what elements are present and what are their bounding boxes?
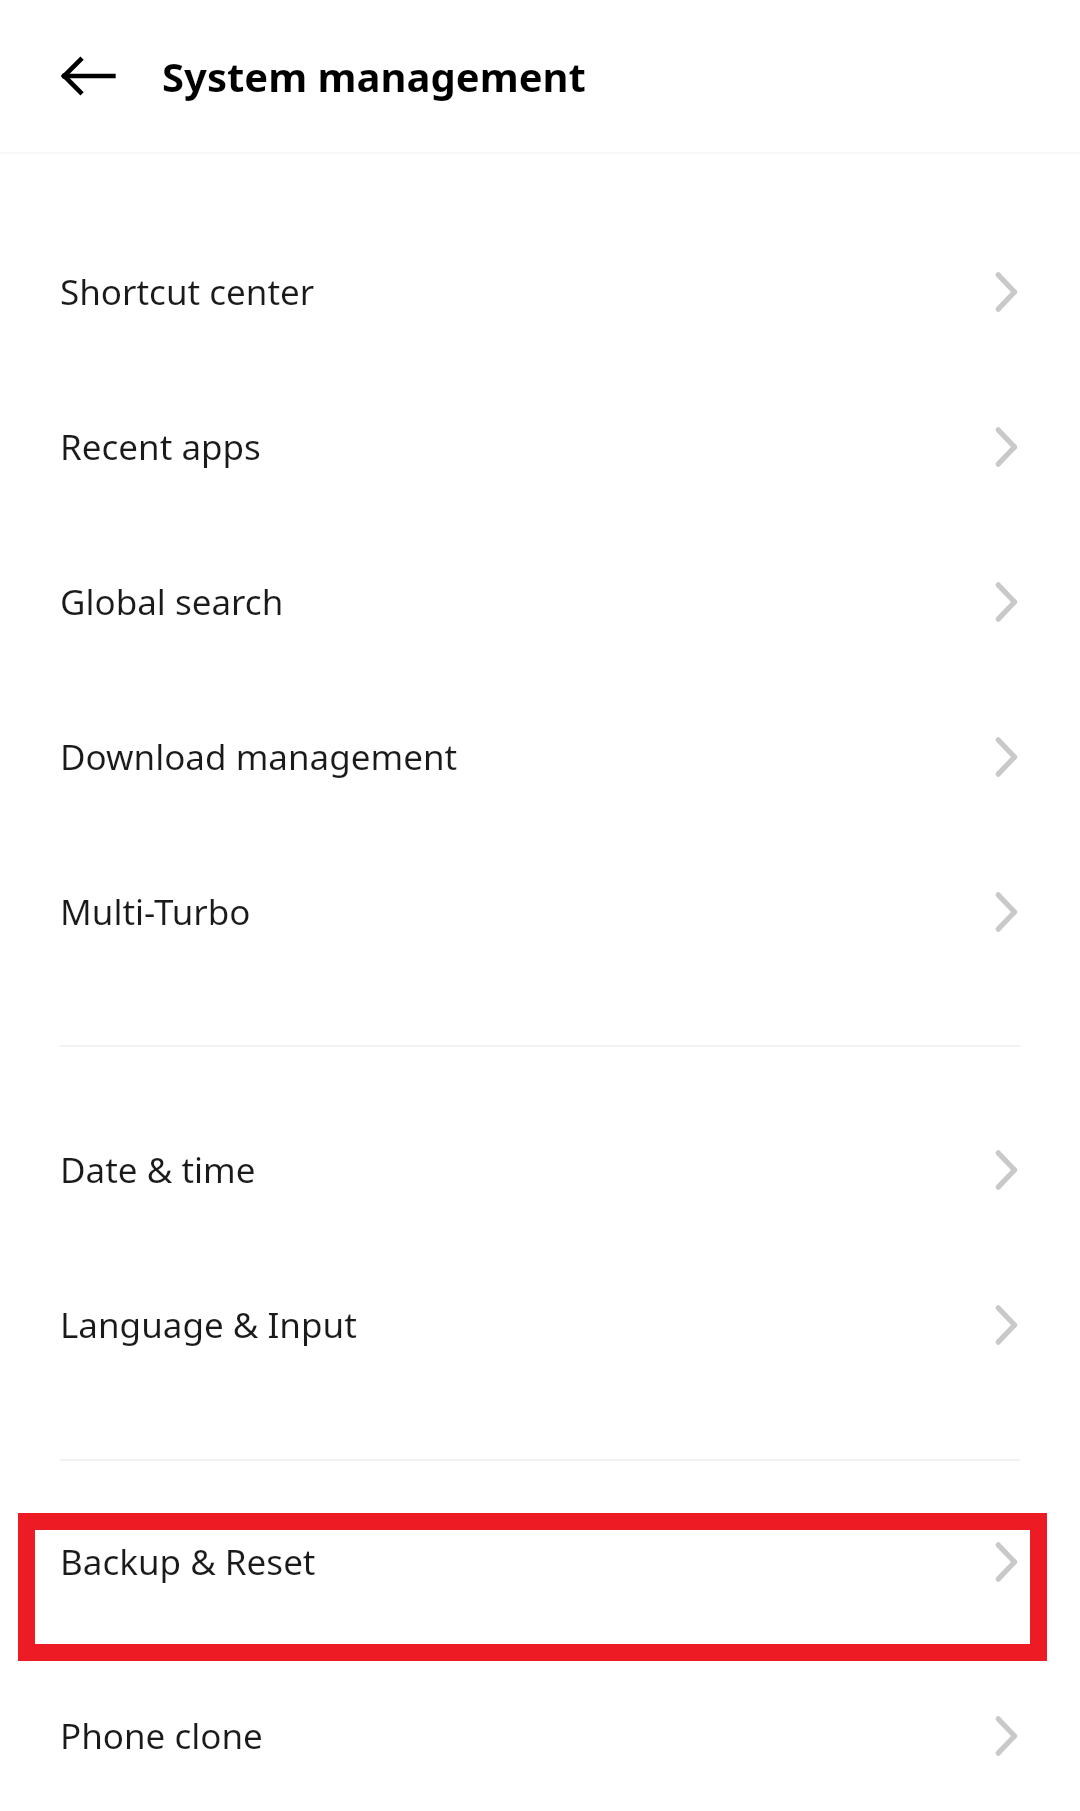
button[interactable]: Language & Input	[0, 1247, 1080, 1402]
button[interactable]: Phone clone	[0, 1661, 1080, 1811]
button[interactable]: Global search	[0, 524, 1080, 679]
staticText: System management	[162, 49, 586, 103]
staticText: Phone clone	[60, 1712, 988, 1760]
staticText: Shortcut center	[60, 268, 988, 316]
staticText: Date & time	[60, 1146, 988, 1194]
staticText: Download management	[60, 733, 988, 781]
button[interactable]: Shortcut center	[0, 214, 1080, 369]
staticText: Language & Input	[60, 1301, 988, 1349]
button[interactable]: Back	[52, 40, 124, 112]
button[interactable]: Backup & Reset	[0, 1484, 1080, 1639]
staticText: Multi-Turbo	[60, 888, 988, 936]
staticText: Global search	[60, 578, 988, 626]
staticText: Recent apps	[60, 423, 988, 471]
button[interactable]: Date & time	[0, 1092, 1080, 1247]
button[interactable]: Multi-Turbo	[0, 834, 1080, 989]
button[interactable]: Download management	[0, 679, 1080, 834]
button[interactable]: Recent apps	[0, 369, 1080, 524]
staticText: Backup & Reset	[60, 1538, 988, 1586]
